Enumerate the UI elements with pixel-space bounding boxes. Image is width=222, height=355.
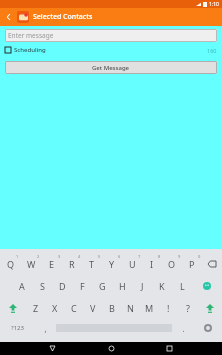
button[interactable]: Backspace — [202, 253, 222, 275]
staticText: 1:10 — [209, 1, 219, 8]
staticText: . — [182, 323, 185, 334]
button[interactable]: L — [172, 275, 192, 297]
staticText: 9 — [178, 254, 181, 259]
button[interactable]: Period — [172, 319, 194, 337]
staticText: N — [127, 302, 134, 314]
button[interactable]: 1 — [0, 253, 21, 275]
staticText: 5 — [98, 254, 101, 259]
staticText: M — [145, 302, 154, 314]
button[interactable]: Home — [105, 342, 118, 355]
staticText: J — [141, 280, 144, 292]
button[interactable]: V — [83, 297, 102, 319]
staticText: Q — [7, 258, 15, 270]
button[interactable]: 2 — [21, 253, 42, 275]
button[interactable]: Emoji — [192, 275, 222, 297]
staticText: 8 — [158, 254, 161, 259]
staticText: ? — [186, 302, 190, 314]
staticText: C — [71, 302, 77, 314]
button[interactable]: Comma — [34, 319, 56, 337]
staticText: , — [44, 323, 47, 334]
button[interactable]: Scheduling — [5, 45, 46, 55]
staticText: Get Message — [92, 64, 130, 72]
staticText: Scheduling — [14, 46, 46, 54]
staticText: R — [69, 258, 75, 270]
staticText: 6 — [118, 254, 121, 259]
button[interactable]: A — [11, 275, 32, 297]
button[interactable]: ?123 — [0, 319, 34, 337]
button[interactable]: Z — [26, 297, 45, 319]
staticText: 160 — [207, 47, 217, 54]
button[interactable]: M — [140, 297, 159, 319]
button[interactable]: 6 — [102, 253, 122, 275]
staticText: L — [180, 280, 185, 292]
staticText: X — [52, 302, 58, 314]
staticText: W — [27, 258, 36, 270]
staticText: G — [99, 280, 106, 292]
button[interactable]: 3 — [42, 253, 62, 275]
staticText: K — [159, 280, 165, 292]
button[interactable]: 8 — [142, 253, 162, 275]
staticText: Enter message — [8, 31, 54, 40]
staticText: 1 — [16, 254, 19, 259]
button[interactable]: F — [72, 275, 92, 297]
button[interactable]: C — [64, 297, 83, 319]
staticText: P — [189, 258, 195, 270]
staticText: S — [40, 280, 45, 292]
button[interactable]: S — [32, 275, 52, 297]
staticText: A — [19, 280, 25, 292]
staticText: D — [59, 280, 66, 292]
staticText: H — [119, 280, 126, 292]
staticText: ?123 — [11, 324, 24, 332]
staticText: 4 — [78, 254, 81, 259]
button[interactable]: Shift — [0, 297, 26, 319]
button[interactable]: J — [132, 275, 152, 297]
staticText: 7 — [138, 254, 141, 259]
button[interactable]: Enter message — [5, 29, 217, 42]
staticText: Y — [109, 258, 115, 270]
button[interactable]: B — [102, 297, 121, 319]
button[interactable]: 9 — [162, 253, 182, 275]
staticText: F — [80, 280, 85, 292]
staticText: 3 — [58, 254, 61, 259]
staticText: V — [90, 302, 96, 314]
staticText: ! — [167, 302, 170, 314]
button[interactable]: Back — [46, 342, 59, 355]
staticText: Z — [33, 302, 39, 314]
button[interactable]: N — [121, 297, 140, 319]
button[interactable]: D — [52, 275, 72, 297]
staticText: E — [49, 258, 55, 270]
button[interactable]: K — [152, 275, 172, 297]
button[interactable]: ? — [178, 297, 197, 319]
button[interactable]: Recents — [163, 342, 176, 355]
staticText: B — [109, 302, 115, 314]
staticText: 2 — [37, 254, 40, 259]
button[interactable]: Shift — [197, 297, 222, 319]
button[interactable]: 0 — [182, 253, 202, 275]
button[interactable]: X — [45, 297, 64, 319]
staticText: U — [129, 258, 136, 270]
button[interactable]: 5 — [82, 253, 102, 275]
button[interactable]: 7 — [122, 253, 142, 275]
staticText: O — [168, 258, 176, 270]
staticText: Selected Contacts — [33, 12, 93, 22]
staticText: T — [89, 258, 95, 270]
staticText: I — [150, 258, 154, 270]
button[interactable]: Back — [4, 12, 14, 22]
button[interactable]: Get Message — [5, 61, 217, 74]
staticText: 0 — [198, 254, 201, 259]
button[interactable]: Enter — [194, 319, 222, 337]
button[interactable]: 4 — [62, 253, 82, 275]
button[interactable]: H — [112, 275, 132, 297]
button[interactable]: G — [92, 275, 112, 297]
button[interactable]: ! — [159, 297, 178, 319]
